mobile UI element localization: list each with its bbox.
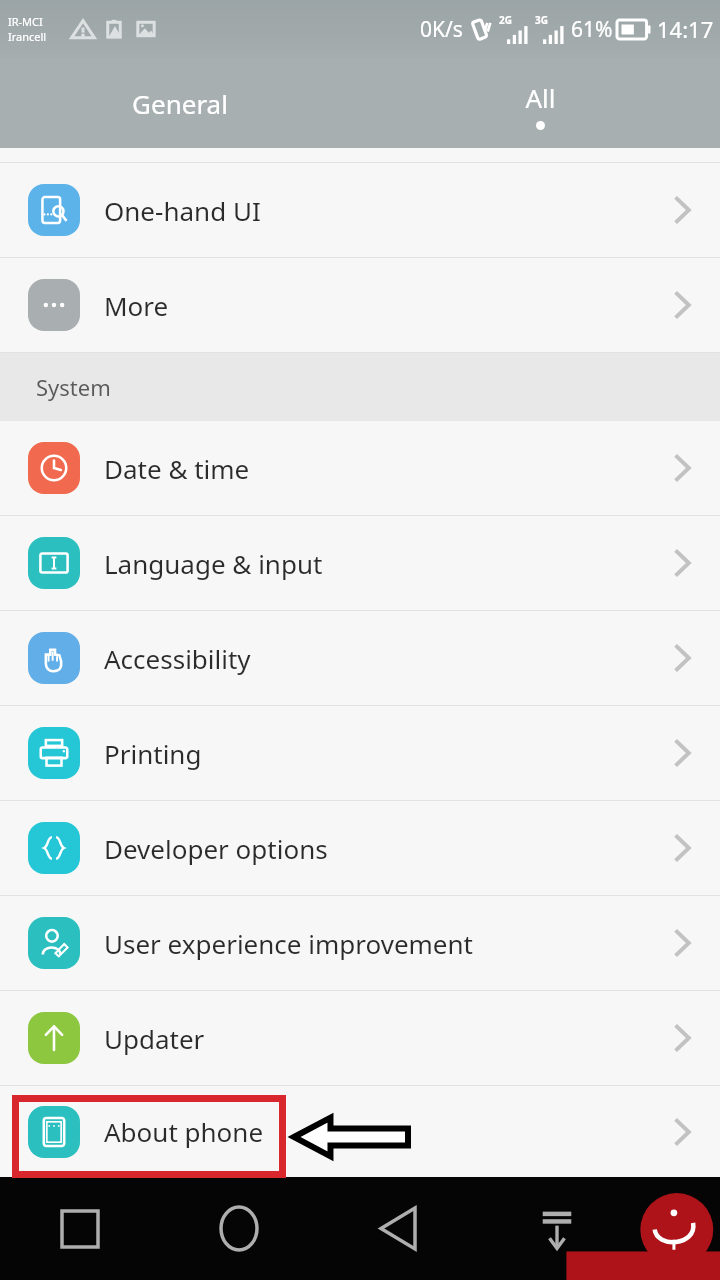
staticText: 0K/s [420, 15, 463, 44]
staticText: All [525, 80, 556, 115]
staticText: Irancell [8, 29, 47, 44]
button[interactable]: Hide navigation bar [477, 1177, 636, 1280]
staticText: 2G [499, 13, 512, 27]
button[interactable]: User experience improvement [0, 896, 720, 990]
staticText: 61% [571, 15, 613, 44]
button[interactable]: Developer options [0, 801, 720, 895]
staticText: Date & time [104, 451, 672, 486]
button[interactable]: Updater [0, 991, 720, 1085]
staticText: User experience improvement [104, 926, 672, 961]
staticText: General [132, 86, 228, 121]
button[interactable]: Date & time [0, 421, 720, 515]
button[interactable]: Accessibility [0, 611, 720, 705]
button[interactable]: Language & input [0, 516, 720, 610]
button[interactable]: More [0, 258, 720, 352]
staticText: One-hand UI [104, 193, 672, 228]
staticText: 14:17 [657, 14, 714, 44]
staticText: Developer options [104, 831, 672, 866]
button[interactable]: Recent apps [0, 1177, 159, 1280]
staticText: Updater [104, 1021, 672, 1056]
button[interactable]: One-hand UI [0, 163, 720, 257]
staticText: IR-MCI [8, 14, 43, 29]
button[interactable]: About phone [0, 1086, 720, 1177]
staticText: More [104, 288, 672, 323]
staticText: Language & input [104, 546, 672, 581]
staticText: Printing [104, 736, 672, 771]
button[interactable]: Printing [0, 706, 720, 800]
staticText: About phone [104, 1114, 672, 1149]
button[interactable]: Home [159, 1177, 318, 1280]
staticText: Accessibility [104, 641, 672, 676]
staticText: 3G [535, 13, 548, 27]
staticText: System [36, 372, 111, 402]
button[interactable]: Back [318, 1177, 477, 1280]
button[interactable]: All [360, 58, 720, 148]
button[interactable]: General [0, 58, 360, 148]
